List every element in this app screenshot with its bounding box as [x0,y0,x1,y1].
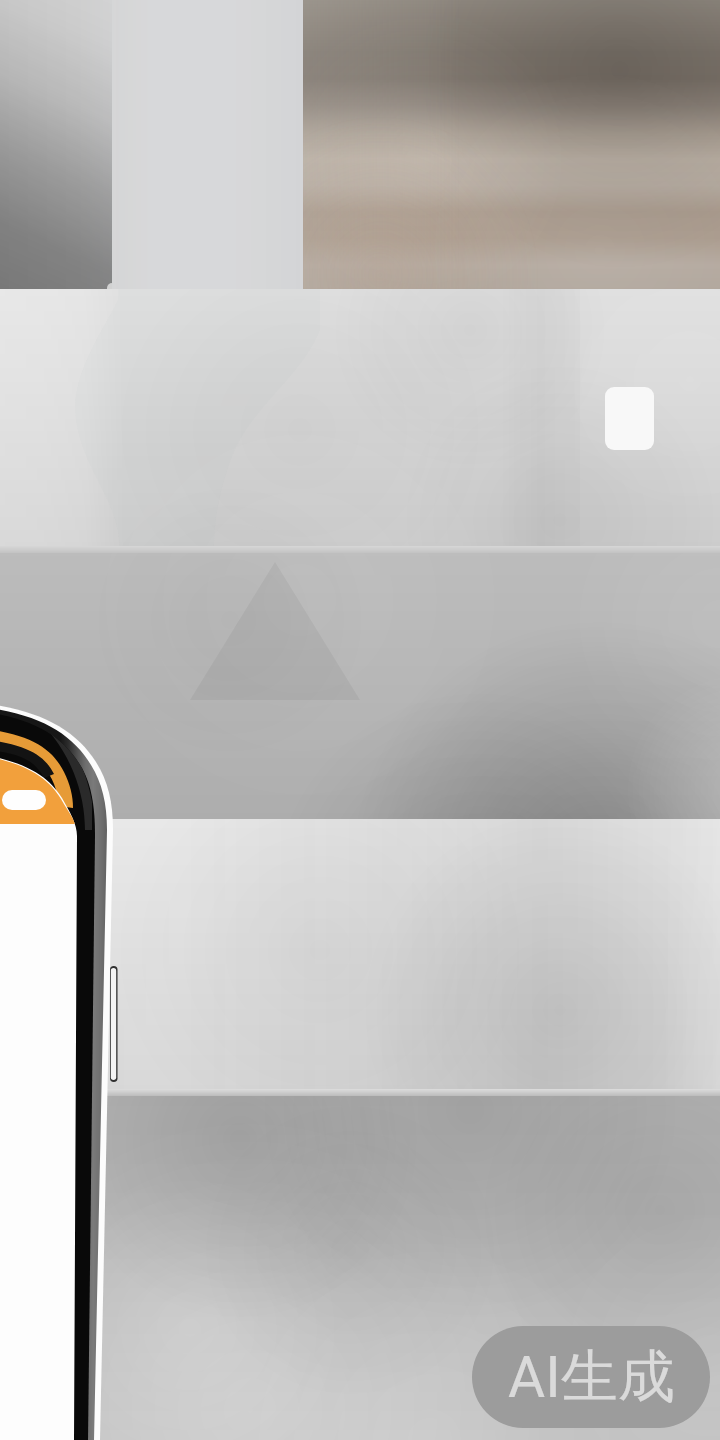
staticText: AI [508,1344,561,1411]
button[interactable]: Search [0,789,48,811]
staticText: 生成 [561,1341,675,1413]
button[interactable]: Power button [108,964,120,1084]
button[interactable]: AI generated watermark [472,1326,710,1428]
